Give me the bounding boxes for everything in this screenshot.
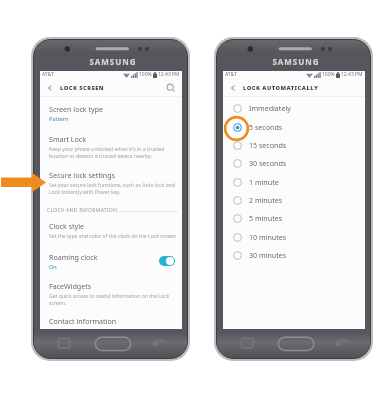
staticText: Pattern <box>49 115 69 123</box>
button[interactable]: Back <box>223 80 365 96</box>
button[interactable]: Recent apps <box>266 333 292 351</box>
staticText: LOCK AUTOMATICALLY <box>243 84 319 92</box>
button[interactable]: Home <box>93 333 133 351</box>
staticText: Secure lock settings <box>49 170 115 180</box>
button[interactable]: FaceWidgets <box>40 281 182 307</box>
button[interactable]: Recent apps <box>83 333 109 351</box>
button[interactable]: Home <box>276 333 316 351</box>
button[interactable]: Search <box>164 81 178 95</box>
button[interactable]: Secure lock settings <box>40 170 182 196</box>
staticText: AT&T <box>225 71 237 78</box>
staticText: Clock style <box>49 221 85 231</box>
staticText: 1 minute <box>249 177 279 187</box>
button[interactable]: Back <box>40 80 182 96</box>
staticText: CLOCK AND INFORMATION <box>47 207 118 214</box>
other: Back <box>46 84 54 92</box>
staticText: Smart Lock <box>49 134 87 144</box>
button[interactable]: Screen lock type <box>40 104 182 123</box>
staticText: 100% <box>139 71 152 78</box>
staticText: On <box>49 263 57 271</box>
other: Back <box>229 84 237 92</box>
staticText: 12:43 PM <box>158 71 180 78</box>
button[interactable]: Back <box>330 333 356 351</box>
button[interactable]: 10 minutes <box>223 228 365 246</box>
button[interactable]: Contact information <box>40 316 182 326</box>
button[interactable]: 5 minutes <box>223 209 365 227</box>
button[interactable]: Immediately <box>223 99 365 117</box>
staticText: LOCK SCREEN <box>60 84 105 92</box>
staticText: 10 minutes <box>249 232 287 242</box>
button[interactable]: 2 minutes <box>223 191 365 209</box>
staticText: Immediately <box>249 103 291 113</box>
staticText: SAMSUNG <box>83 56 143 67</box>
staticText: Keep your phone unlocked when it's in a … <box>49 146 165 160</box>
staticText: 15 seconds <box>249 140 287 150</box>
staticText: Set the type and color of the clock on t… <box>49 233 176 240</box>
staticText: SAMSUNG <box>266 56 326 67</box>
staticText: 2 minutes <box>249 195 283 205</box>
button[interactable]: 1 minute <box>223 173 365 191</box>
staticText: AT&T <box>42 71 54 78</box>
button[interactable]: 5 seconds <box>223 118 365 136</box>
button[interactable]: Clock style <box>40 221 182 240</box>
staticText: 5 seconds <box>249 122 283 132</box>
staticText: 30 seconds <box>249 158 287 168</box>
button[interactable]: 30 minutes <box>223 246 365 264</box>
staticText: Set your secure lock functions, such as … <box>49 182 175 196</box>
staticText: 12:43 PM <box>341 71 363 78</box>
staticText: 30 minutes <box>249 250 287 260</box>
staticText: Get quick access to useful information o… <box>49 293 170 307</box>
button[interactable]: Smart Lock <box>40 134 182 160</box>
staticText: 5 minutes <box>249 213 283 223</box>
staticText: Contact information <box>49 316 117 326</box>
button[interactable]: 30 seconds <box>223 154 365 172</box>
button[interactable]: Back <box>147 333 173 351</box>
button[interactable]: 15 seconds <box>223 136 365 154</box>
staticText: FaceWidgets <box>49 281 92 291</box>
staticText: 100% <box>322 71 335 78</box>
staticText: Roaming clock <box>49 252 98 262</box>
button[interactable]: Roaming clock <box>40 252 182 271</box>
staticText: Screen lock type <box>49 104 104 114</box>
